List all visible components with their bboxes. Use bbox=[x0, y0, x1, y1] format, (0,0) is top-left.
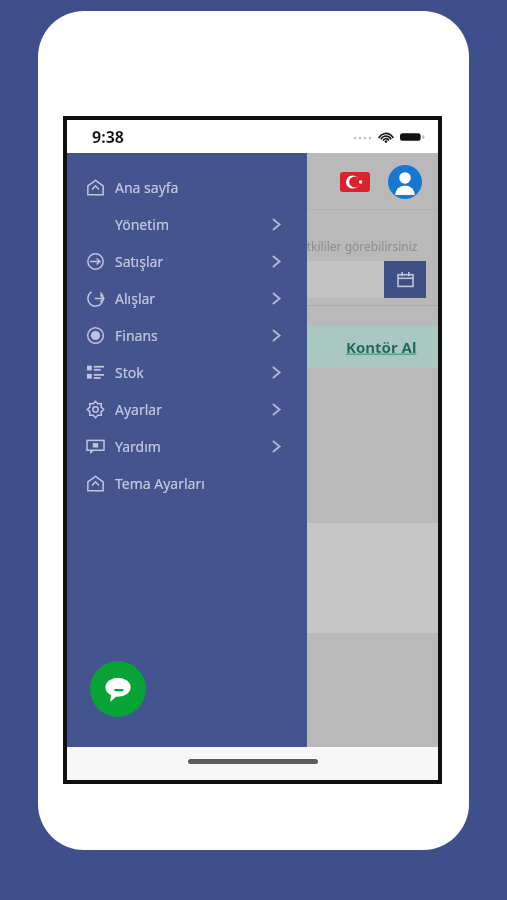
staticText: Finans bbox=[115, 326, 158, 345]
staticText: Stok bbox=[115, 363, 144, 382]
staticText: Yardım bbox=[115, 437, 161, 456]
button[interactable]: Alışlar bbox=[67, 280, 307, 317]
button[interactable]: Takvim bbox=[384, 261, 426, 298]
button[interactable]: Satışlar bbox=[67, 243, 307, 280]
button[interactable]: Ayarlar bbox=[67, 391, 307, 428]
staticText: Ayarlar bbox=[115, 400, 162, 419]
staticText: Kalan kontör: bbox=[71, 380, 181, 403]
button[interactable]: Stok bbox=[67, 354, 307, 391]
button[interactable]: Tema Ayarları bbox=[67, 465, 307, 502]
button[interactable]: Sohbet bbox=[90, 661, 146, 717]
staticText: Tema Ayarları bbox=[115, 474, 205, 493]
button[interactable]: Finans bbox=[67, 317, 307, 354]
staticText: Yönetim bbox=[115, 215, 169, 234]
staticText: Alışlar bbox=[115, 289, 156, 308]
button[interactable]: Kontör Al bbox=[346, 337, 417, 357]
staticText: Ana sayfa bbox=[115, 178, 179, 197]
button[interactable]: Yönetim bbox=[67, 206, 307, 243]
staticText: Satışlar bbox=[115, 252, 164, 271]
button[interactable]: Yardım bbox=[67, 428, 307, 465]
button[interactable]: Ana sayfa bbox=[67, 169, 307, 206]
staticText: 9:38 bbox=[92, 126, 124, 148]
staticText: Burada bulunan bilgileri sadece siz ve y… bbox=[79, 238, 418, 254]
